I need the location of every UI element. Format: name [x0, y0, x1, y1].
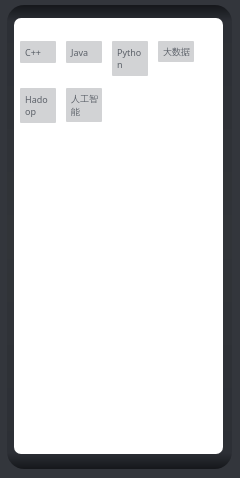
staticText: C++: [25, 46, 41, 58]
staticText: Python: [117, 46, 144, 71]
staticText: Hadoop: [25, 93, 52, 118]
button[interactable]: Hadoop: [20, 88, 56, 123]
button[interactable]: 人工智能: [66, 88, 102, 122]
button[interactable]: 大数据: [158, 41, 194, 62]
staticText: 大数据: [163, 46, 190, 57]
button[interactable]: C++: [20, 41, 56, 63]
staticText: 人工智能: [71, 93, 98, 117]
button[interactable]: Python: [112, 41, 148, 76]
staticText: Java: [71, 46, 89, 58]
button[interactable]: Java: [66, 41, 102, 63]
